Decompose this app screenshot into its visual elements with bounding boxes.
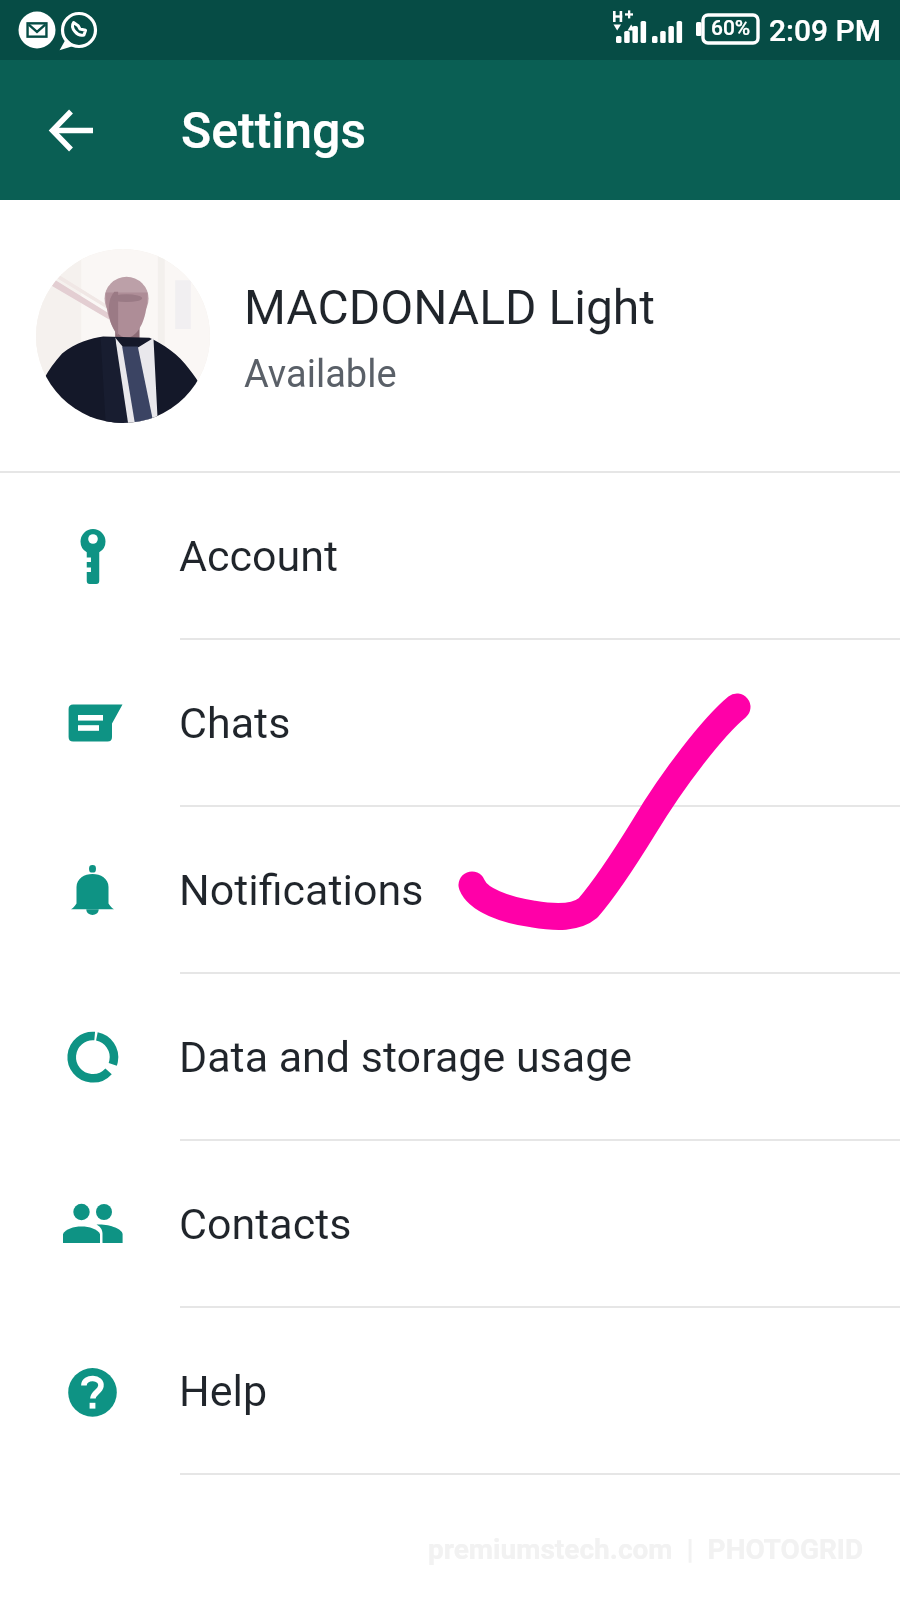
staticText: Chats [179,698,291,748]
button[interactable]: Notifications [0,807,900,972]
staticText: Account [179,531,339,581]
staticText: 2:09 PM [769,13,882,48]
staticText: 60% [711,16,751,41]
button[interactable]: Back [26,86,114,174]
button[interactable]: Chats [0,640,900,805]
staticText: Notifications [179,865,424,915]
staticText: Help [179,1366,268,1416]
staticText: premiumstech.com | PHOTOGRID [428,1533,864,1566]
staticText: Contacts [179,1199,352,1249]
button[interactable]: Data and storage usage [0,974,900,1139]
button[interactable]: MACDONALD Light [0,200,900,471]
button[interactable]: Account [0,473,900,638]
button[interactable]: Help [0,1308,900,1473]
staticText: Settings [181,102,367,161]
staticText: Data and storage usage [179,1032,633,1082]
button[interactable]: Contacts [0,1141,900,1306]
staticText: MACDONALD Light [244,279,655,335]
staticText: Available [244,352,397,397]
